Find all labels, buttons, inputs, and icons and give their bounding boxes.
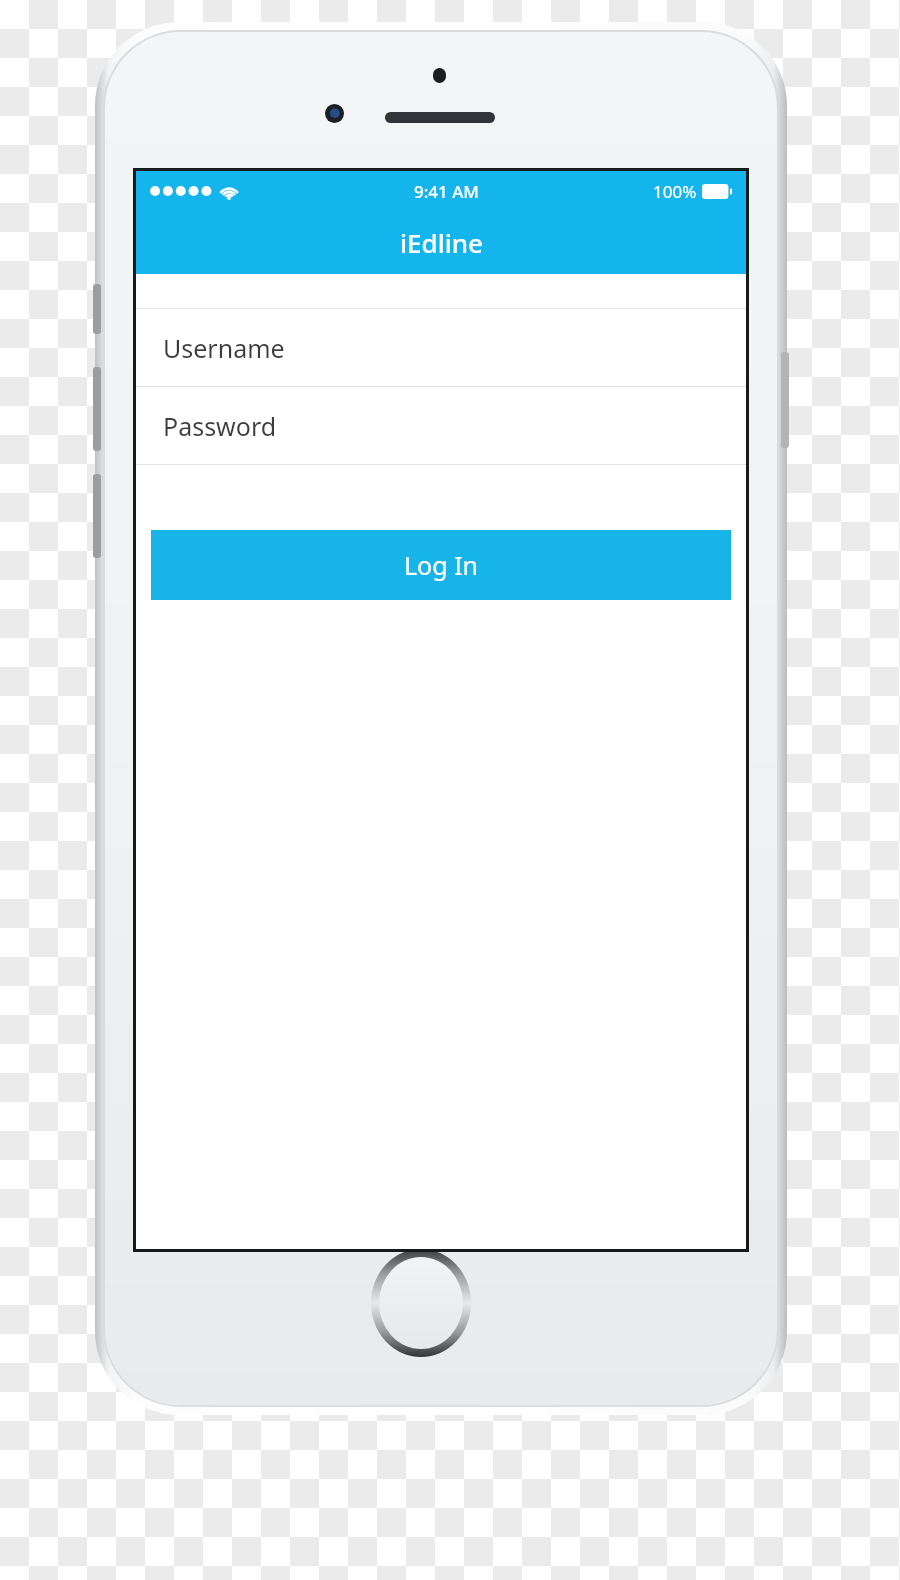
staticText: Password bbox=[163, 409, 277, 443]
button[interactable]: Home bbox=[367, 1245, 475, 1361]
staticText: 100% bbox=[653, 180, 697, 203]
button[interactable]: Log In bbox=[151, 530, 731, 600]
staticText: 9:41 AM bbox=[414, 180, 479, 203]
staticText: iEdline bbox=[400, 225, 483, 260]
button[interactable]: Username bbox=[136, 309, 746, 386]
staticText: Log In bbox=[404, 548, 479, 582]
button[interactable]: Password bbox=[136, 387, 746, 464]
staticText: Username bbox=[163, 331, 285, 365]
